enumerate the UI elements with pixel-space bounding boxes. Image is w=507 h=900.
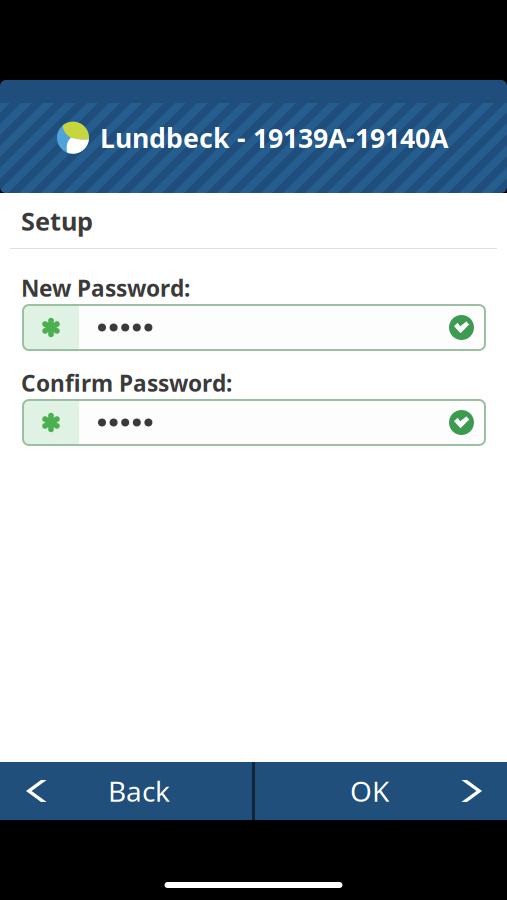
staticText: Setup: [21, 204, 93, 238]
button[interactable]: Confirm Password: [23, 400, 485, 445]
button[interactable]: New Password: [23, 305, 485, 350]
staticText: Confirm Password:: [21, 368, 232, 398]
button[interactable]: Back: [0, 762, 252, 820]
staticText: Back: [108, 772, 170, 810]
staticText: Lundbeck - 19139A-19140A: [100, 120, 448, 155]
button[interactable]: OK: [255, 762, 507, 820]
staticText: OK: [350, 772, 389, 810]
staticText: New Password:: [21, 273, 190, 303]
